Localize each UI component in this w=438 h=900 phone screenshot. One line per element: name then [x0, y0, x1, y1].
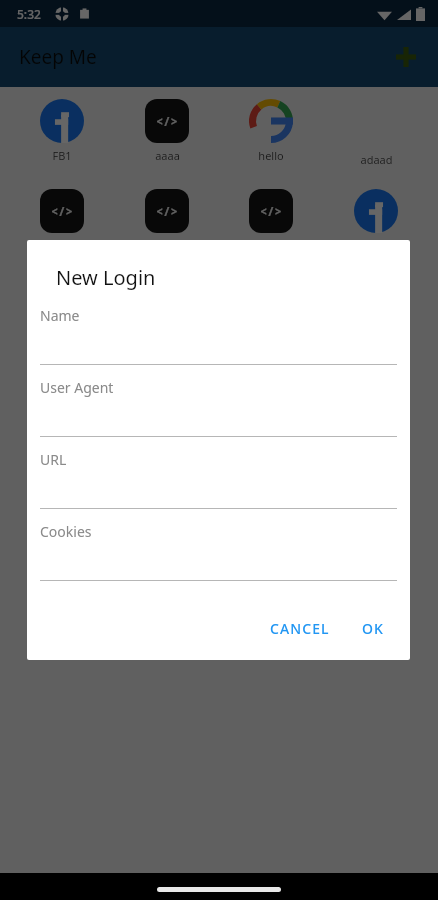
button[interactable]: FB1: [19, 99, 105, 163]
button[interactable]: adaad: [333, 99, 419, 167]
button[interactable]: Add login: [386, 37, 426, 77]
button[interactable]: Name: [40, 304, 397, 376]
staticText: FB1: [52, 148, 72, 163]
button[interactable]: hello: [228, 99, 314, 163]
button[interactable]: URL: [40, 448, 397, 520]
staticText: hello: [258, 148, 284, 163]
button[interactable]: </>: [19, 255, 105, 299]
staticText: </>: [51, 269, 73, 285]
staticText: </>: [156, 113, 178, 129]
button[interactable]: </>: [19, 189, 105, 233]
button[interactable]: OK: [353, 610, 394, 647]
button[interactable]: User Agent: [40, 376, 397, 448]
staticText: </>: [51, 203, 73, 219]
staticText: OK: [362, 619, 385, 638]
staticText: aaaa: [155, 148, 180, 163]
staticText: Cookies: [40, 522, 92, 541]
staticText: New Login: [56, 264, 156, 291]
staticText: Keep Me: [19, 44, 97, 70]
staticText: adaad: [360, 152, 393, 167]
staticText: User Agent: [40, 378, 114, 397]
staticText: Name: [40, 306, 80, 325]
button[interactable]: [333, 189, 419, 233]
button[interactable]: </>: [228, 189, 314, 233]
button[interactable]: </>: [124, 99, 210, 163]
button[interactable]: CANCEL: [261, 610, 339, 647]
button[interactable]: [333, 255, 419, 299]
staticText: URL: [40, 450, 67, 469]
staticText: 5:32: [17, 6, 41, 22]
button[interactable]: </>: [124, 255, 210, 299]
staticText: </>: [260, 203, 282, 219]
button[interactable]: Cookies: [40, 520, 397, 592]
staticText: CANCEL: [270, 619, 330, 638]
button[interactable]: </>: [124, 189, 210, 233]
staticText: </>: [156, 203, 178, 219]
